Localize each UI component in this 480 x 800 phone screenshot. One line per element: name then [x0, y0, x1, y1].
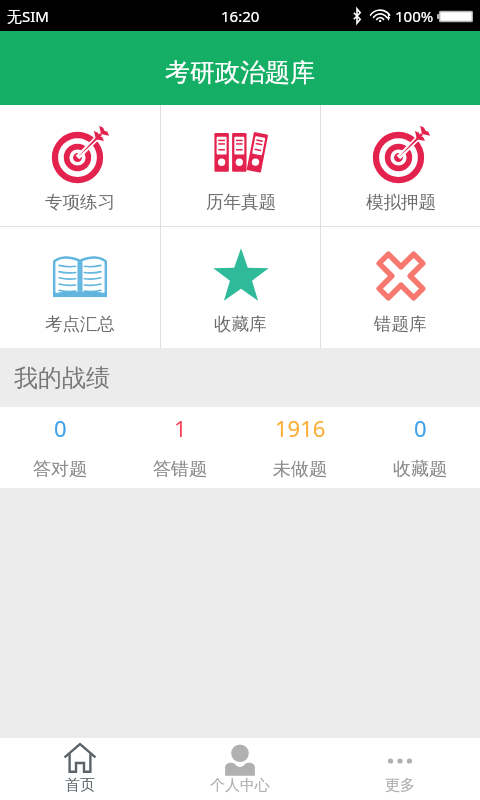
staticText: 更多	[385, 776, 415, 795]
button[interactable]: 收藏库	[161, 227, 320, 348]
button[interactable]: 更多	[320, 738, 480, 800]
button[interactable]: 专项练习	[0, 105, 160, 226]
staticText: 首页	[65, 776, 95, 795]
staticText: 历年真题	[206, 191, 276, 213]
staticText: 100%	[395, 6, 434, 26]
staticText: 错题库	[374, 313, 427, 335]
staticText: 收藏库	[214, 313, 267, 335]
staticText: 1916	[275, 413, 326, 443]
button[interactable]: 首页	[0, 738, 160, 800]
staticText: 个人中心	[210, 776, 270, 795]
button[interactable]: 1916	[240, 407, 360, 488]
staticText: 无SIM	[7, 6, 49, 26]
staticText: 模拟押题	[366, 191, 436, 213]
staticText: 我的战绩	[14, 363, 110, 393]
staticText: 答错题	[153, 458, 207, 481]
button[interactable]: 个人中心	[160, 738, 320, 800]
staticText: 1	[174, 413, 187, 443]
staticText: 0	[414, 413, 427, 443]
staticText: 16:20	[221, 6, 260, 26]
staticText: 0	[54, 413, 67, 443]
button[interactable]: 1	[120, 407, 240, 488]
button[interactable]: 0	[360, 407, 480, 488]
staticText: 考点汇总	[45, 313, 115, 335]
button[interactable]: 错题库	[321, 227, 480, 348]
staticText: 收藏题	[393, 458, 447, 481]
staticText: 考研政治题库	[165, 57, 315, 88]
button[interactable]: 历年真题	[161, 105, 320, 226]
staticText: 答对题	[33, 458, 87, 481]
staticText: 未做题	[273, 458, 327, 481]
button[interactable]: 模拟押题	[321, 105, 480, 226]
staticText: 专项练习	[45, 191, 115, 213]
button[interactable]: 0	[0, 407, 120, 488]
button[interactable]: 考点汇总	[0, 227, 160, 348]
